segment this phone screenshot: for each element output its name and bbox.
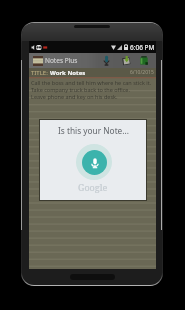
staticText: Google [78,181,108,193]
staticText: Call the boss and tell him where he can … [31,79,152,86]
staticText: 6/10/2015 [130,69,154,76]
staticText: Leave phone and key on his desk. [31,93,118,100]
button[interactable]: Delete note [135,53,153,68]
button[interactable]: Record voice note [97,53,116,68]
staticText: Take company truck back to the office. [31,86,130,93]
staticText: Is this your Note... [58,125,129,136]
button[interactable]: Voice search [76,144,112,180]
staticText: 6:06 PM [130,43,155,52]
staticText: Notes Plus [45,56,78,65]
staticText: Work Notes [50,69,86,77]
button[interactable]: Save note [116,53,135,68]
staticText: TITLE: [31,69,48,77]
